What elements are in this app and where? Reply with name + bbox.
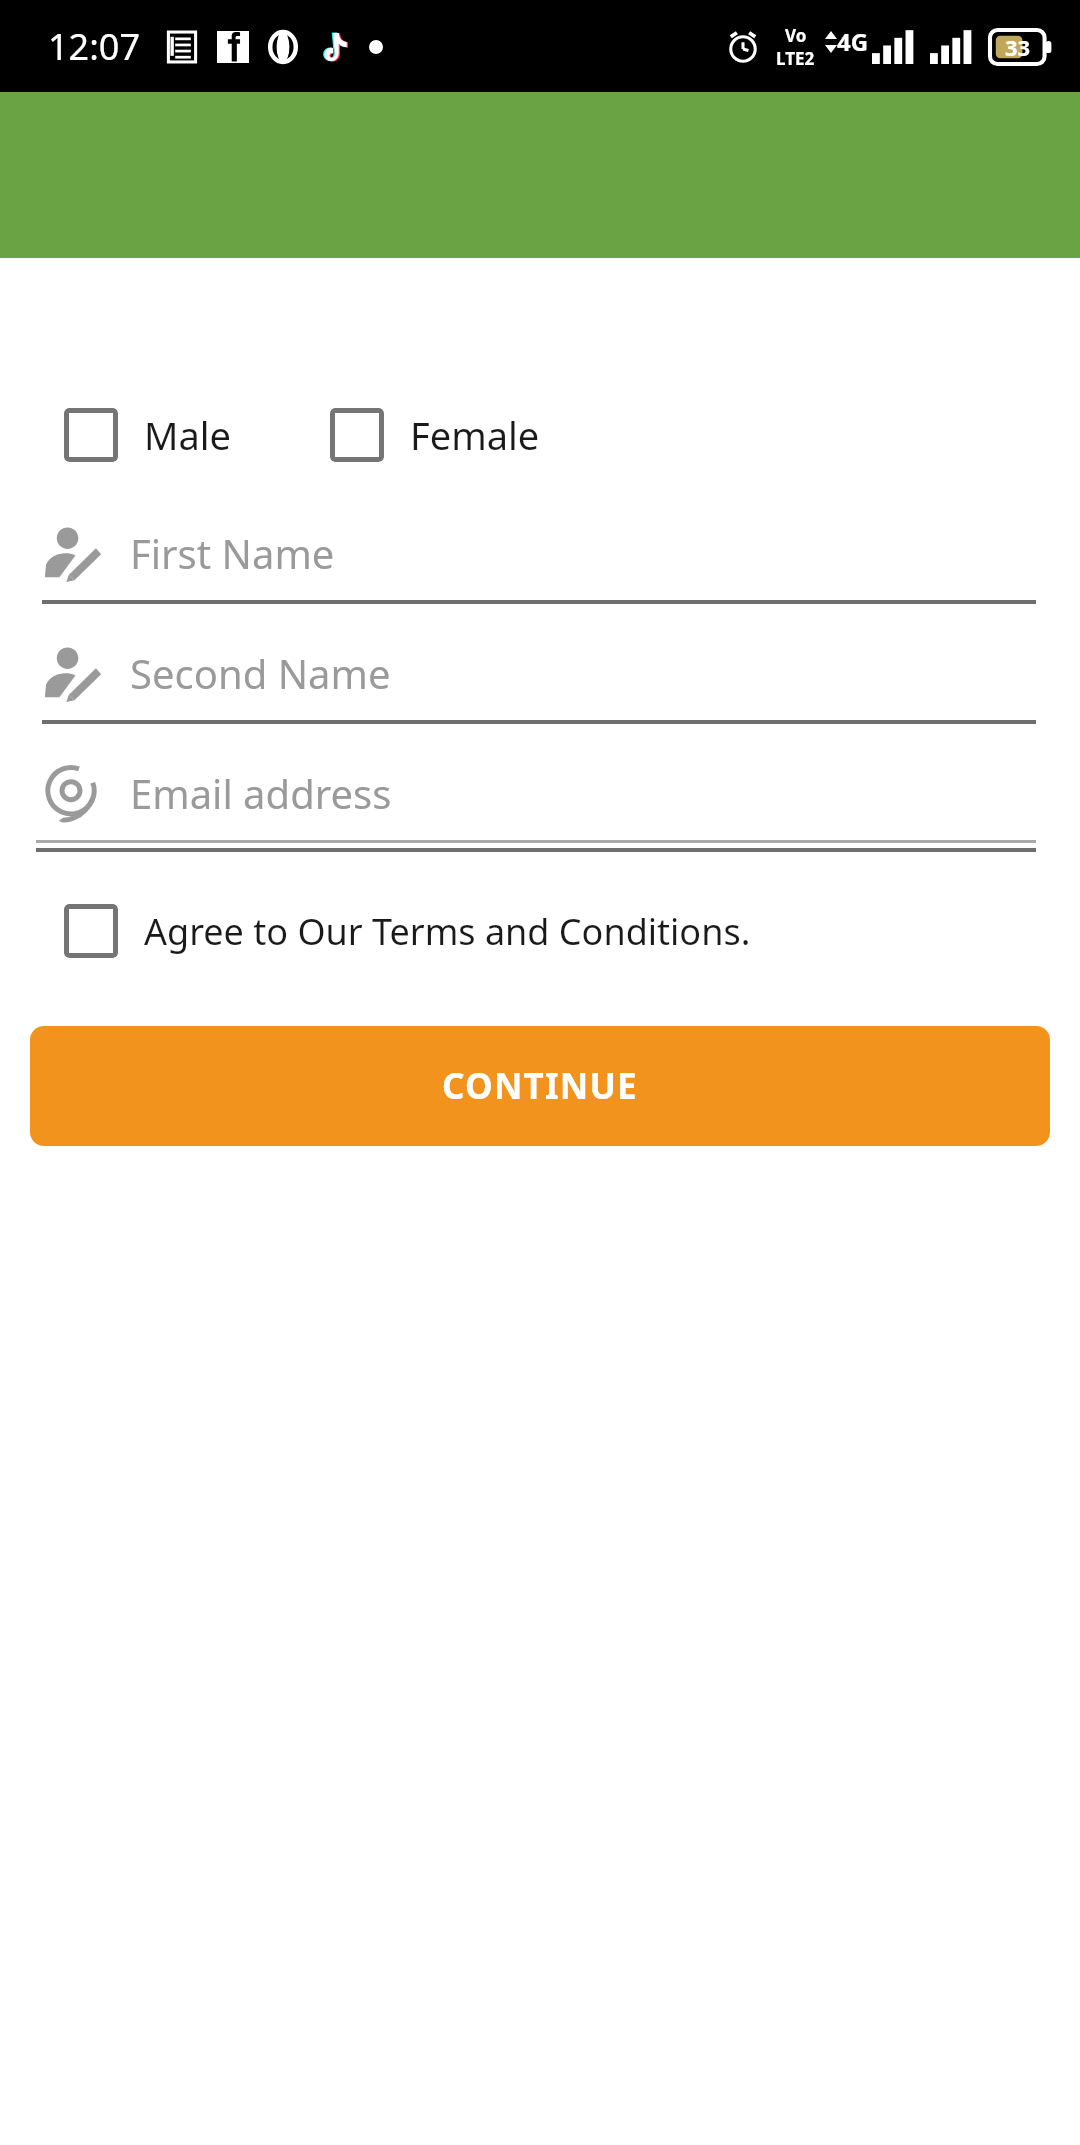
staticText: LTE2 xyxy=(776,47,815,70)
staticText: Email address xyxy=(130,766,392,820)
button[interactable]: Name xyxy=(0,524,1080,604)
staticText: CONTINUE xyxy=(442,1062,638,1110)
staticText: Vo xyxy=(785,24,807,47)
button[interactable]: Female xyxy=(330,408,540,462)
button[interactable]: CONTINUE xyxy=(30,1026,1050,1146)
button[interactable]: Name xyxy=(0,644,1080,724)
other: Email xyxy=(42,764,100,822)
staticText: Female xyxy=(410,409,540,461)
other: Name xyxy=(42,644,100,702)
staticText: 33 xyxy=(1005,32,1031,62)
button[interactable]: Male xyxy=(64,408,232,462)
staticText: Second Name xyxy=(130,646,391,700)
staticText: Agree to Our Terms and Conditions. xyxy=(144,907,751,956)
staticText: First Name xyxy=(130,526,335,580)
staticText: 4G xyxy=(837,25,869,58)
staticText: Male xyxy=(144,409,232,461)
other: Name xyxy=(42,524,100,582)
button[interactable]: Email xyxy=(0,764,1080,852)
button[interactable]: Agree to Our Terms and Conditions. xyxy=(0,904,1080,958)
staticText: 12:07 xyxy=(48,22,141,71)
